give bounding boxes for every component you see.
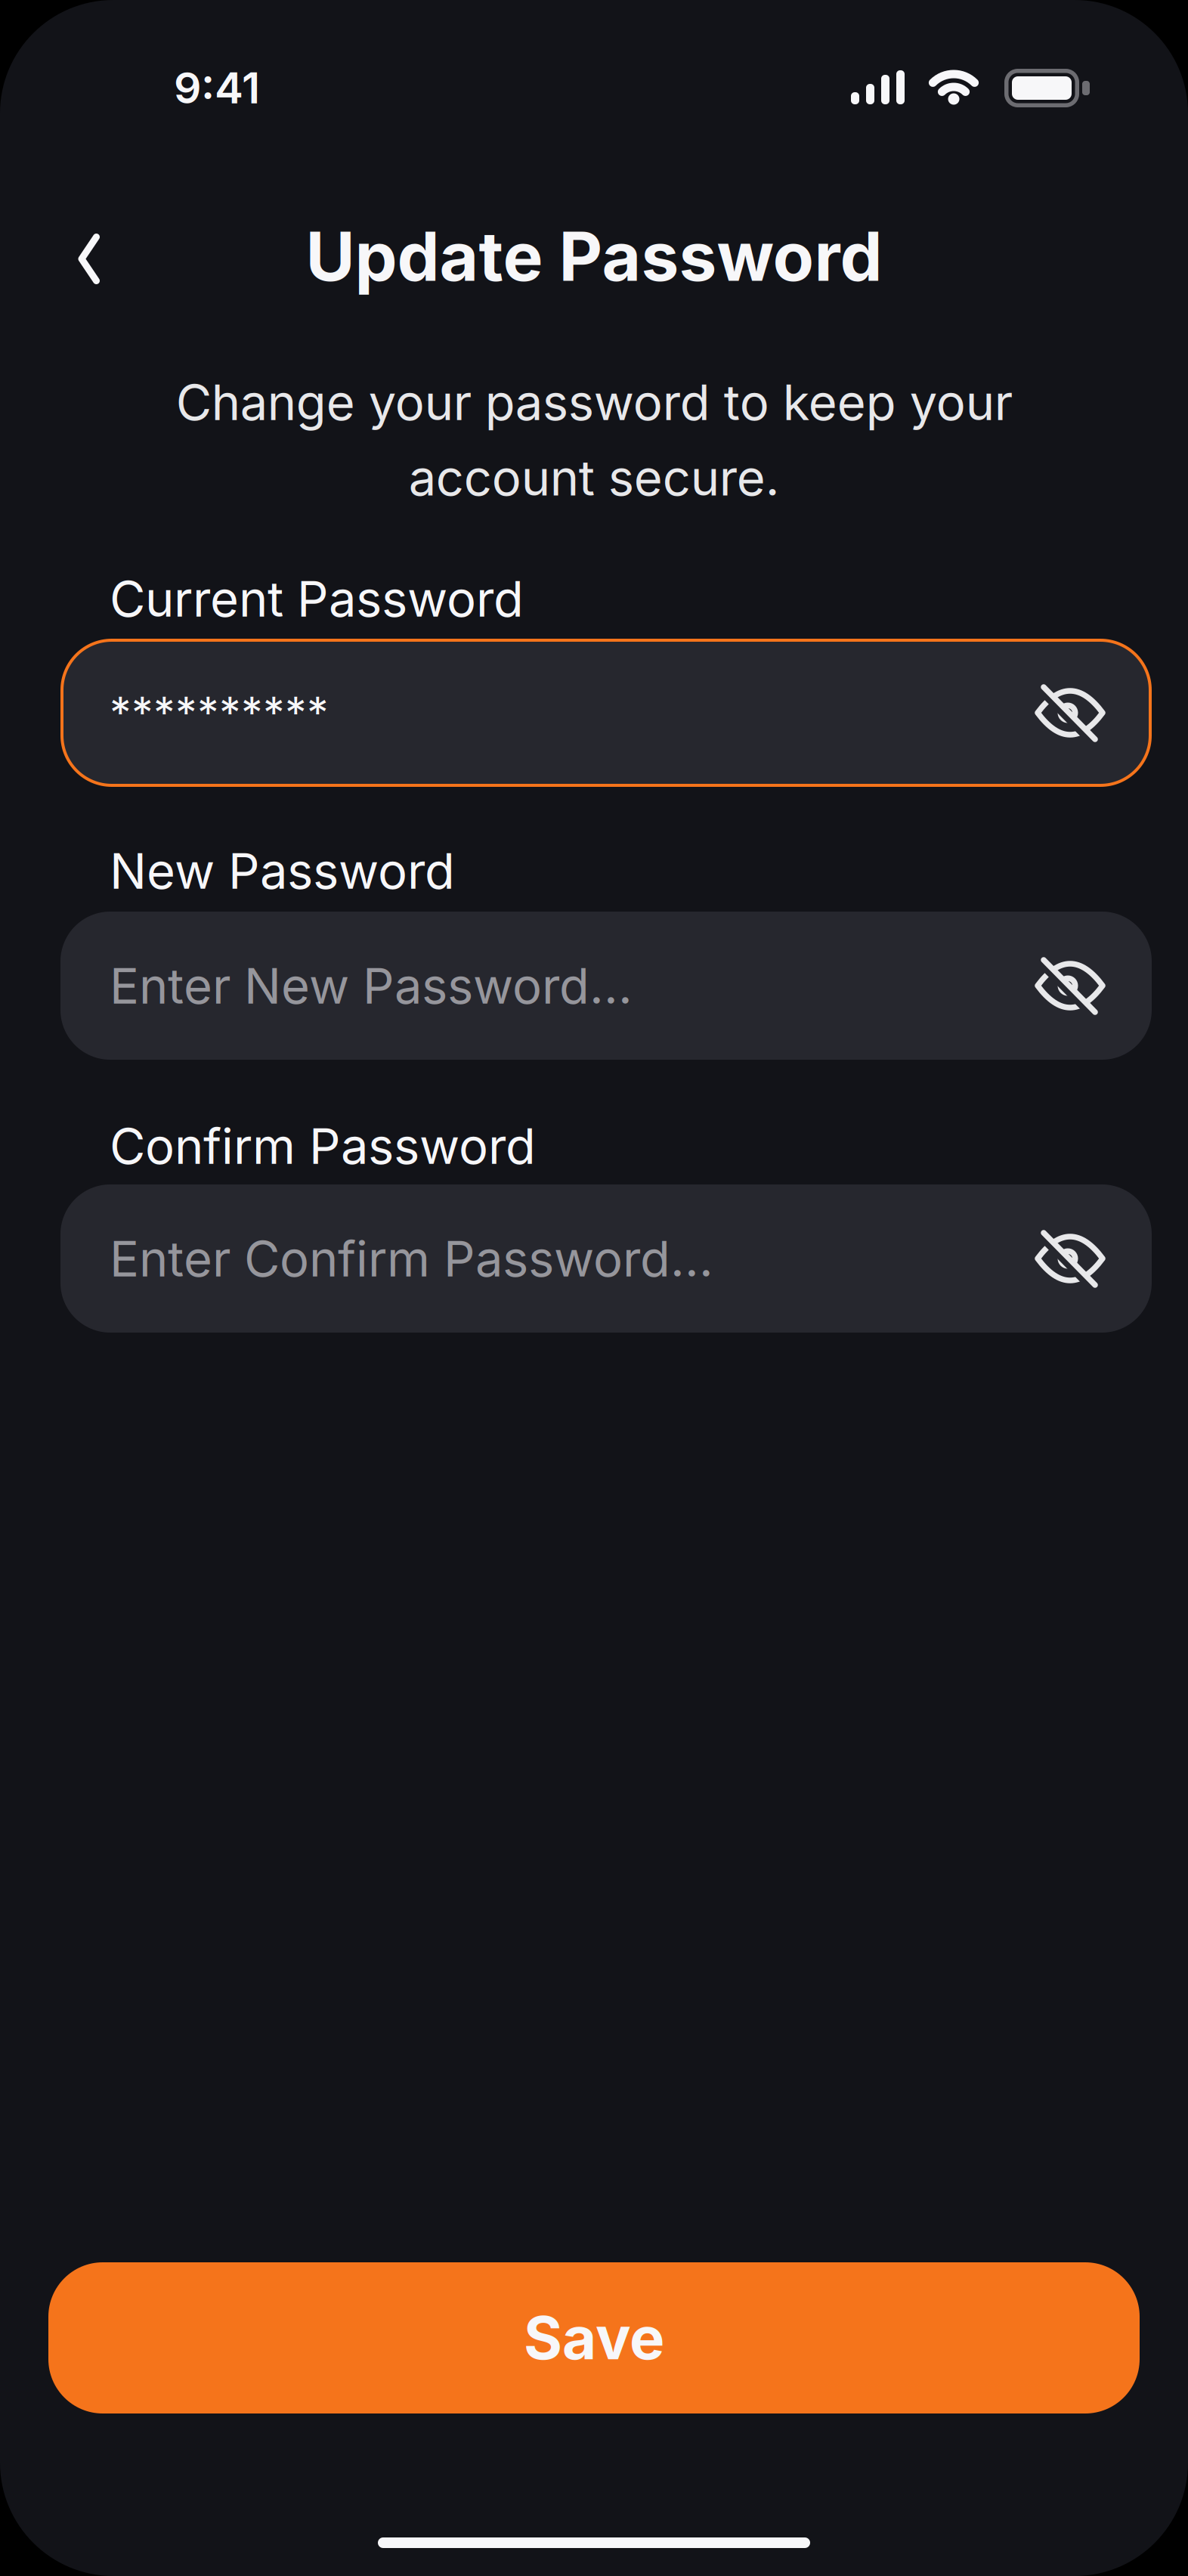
staticText: Confirm Password — [110, 1116, 536, 1176]
staticText: Update Password — [306, 216, 882, 297]
button[interactable]: Show password — [1025, 667, 1115, 758]
button[interactable]: Back — [39, 209, 138, 308]
button[interactable]: Enter New Password... — [60, 912, 1152, 1060]
button[interactable]: ********** — [60, 639, 1152, 787]
button[interactable]: Enter Confirm Password... — [60, 1184, 1152, 1333]
button[interactable]: Show password — [1025, 1213, 1115, 1304]
staticText: Save — [524, 2302, 664, 2374]
staticText: Enter New Password... — [110, 956, 633, 1015]
button[interactable]: Show password — [1025, 940, 1115, 1031]
staticText: 9:41 — [174, 62, 260, 114]
staticText: ********** — [110, 687, 329, 739]
staticText: New Password — [110, 841, 455, 900]
button[interactable]: Save — [48, 2262, 1140, 2413]
staticText: Change your password to keep your accoun… — [176, 373, 1012, 507]
staticText: Current Password — [110, 569, 524, 628]
staticText: Enter Confirm Password... — [110, 1229, 713, 1288]
